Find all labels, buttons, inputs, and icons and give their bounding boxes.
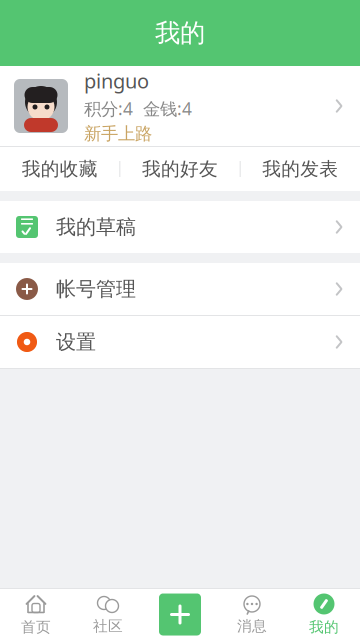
- button[interactable]: 我的草稿: [0, 201, 360, 253]
- staticText: pinguo: [84, 68, 149, 94]
- staticText: 我的草稿: [56, 215, 136, 239]
- staticText: 首页: [21, 618, 51, 636]
- button[interactable]: 我的收藏: [0, 147, 119, 191]
- staticText: 我的: [155, 17, 205, 48]
- staticText: 我的发表: [262, 157, 338, 180]
- staticText: 我的好友: [142, 157, 218, 180]
- button[interactable]: 帐号管理: [0, 263, 360, 315]
- button[interactable]: pinguo: [0, 66, 360, 146]
- staticText: 设置: [56, 330, 96, 354]
- button[interactable]: 社区: [72, 589, 144, 640]
- button[interactable]: 设置: [0, 316, 360, 368]
- button[interactable]: 消息: [216, 589, 288, 640]
- button[interactable]: 发布: [144, 589, 216, 640]
- button[interactable]: 我的发表: [241, 147, 360, 191]
- staticText: 我的收藏: [22, 157, 98, 180]
- staticText: 帐号管理: [56, 277, 136, 301]
- staticText: 社区: [93, 617, 123, 635]
- staticText: 我的: [309, 618, 339, 636]
- staticText: 新手上路: [84, 123, 152, 144]
- button[interactable]: 首页: [0, 589, 72, 640]
- staticText: 积分:4 金钱:4: [84, 97, 192, 120]
- button[interactable]: 我的好友: [120, 147, 240, 191]
- staticText: 消息: [237, 617, 267, 635]
- button[interactable]: 我的: [288, 589, 360, 640]
